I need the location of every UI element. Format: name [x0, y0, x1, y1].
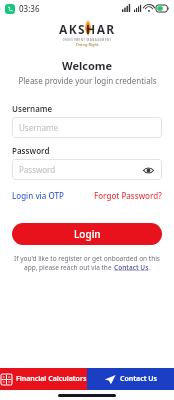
- staticText: Contact Us: [120, 374, 158, 384]
- staticText: Contact Us: [114, 263, 149, 272]
- button[interactable]: Forgot Password?: [94, 190, 162, 201]
- staticText: If you'd like to register or get onboard…: [14, 254, 160, 263]
- staticText: Login via OTP: [12, 190, 64, 201]
- staticText: 03:36: [19, 3, 40, 14]
- button[interactable]: Login: [12, 223, 162, 245]
- button[interactable]: Contact Us: [114, 263, 149, 272]
- button[interactable]: Login via OTP: [12, 190, 64, 201]
- staticText: Username: [19, 122, 58, 133]
- button[interactable]: Contact Us: [87, 368, 174, 390]
- staticText: Welcome: [62, 58, 113, 73]
- button[interactable]: Username: [12, 117, 162, 138]
- staticText: Login: [74, 227, 101, 241]
- staticText: Financial Calculators: [16, 374, 87, 384]
- button[interactable]: Show password: [141, 163, 155, 177]
- button[interactable]: Financial Calculators: [0, 368, 87, 390]
- staticText: Please provide your login credentials: [18, 75, 157, 86]
- staticText: Doing Right: [76, 42, 99, 47]
- staticText: AKSHAR: [59, 21, 116, 37]
- staticText: Password: [19, 164, 56, 175]
- staticText: Forgot Password?: [94, 190, 162, 201]
- staticText: app, please reach out via the: [24, 263, 114, 272]
- staticText: Password: [12, 145, 50, 156]
- staticText: INVESTMENT MANAGEMENT: [63, 38, 112, 42]
- staticText: .: [149, 263, 151, 272]
- button[interactable]: Password: [12, 159, 162, 180]
- staticText: Username: [12, 103, 53, 114]
